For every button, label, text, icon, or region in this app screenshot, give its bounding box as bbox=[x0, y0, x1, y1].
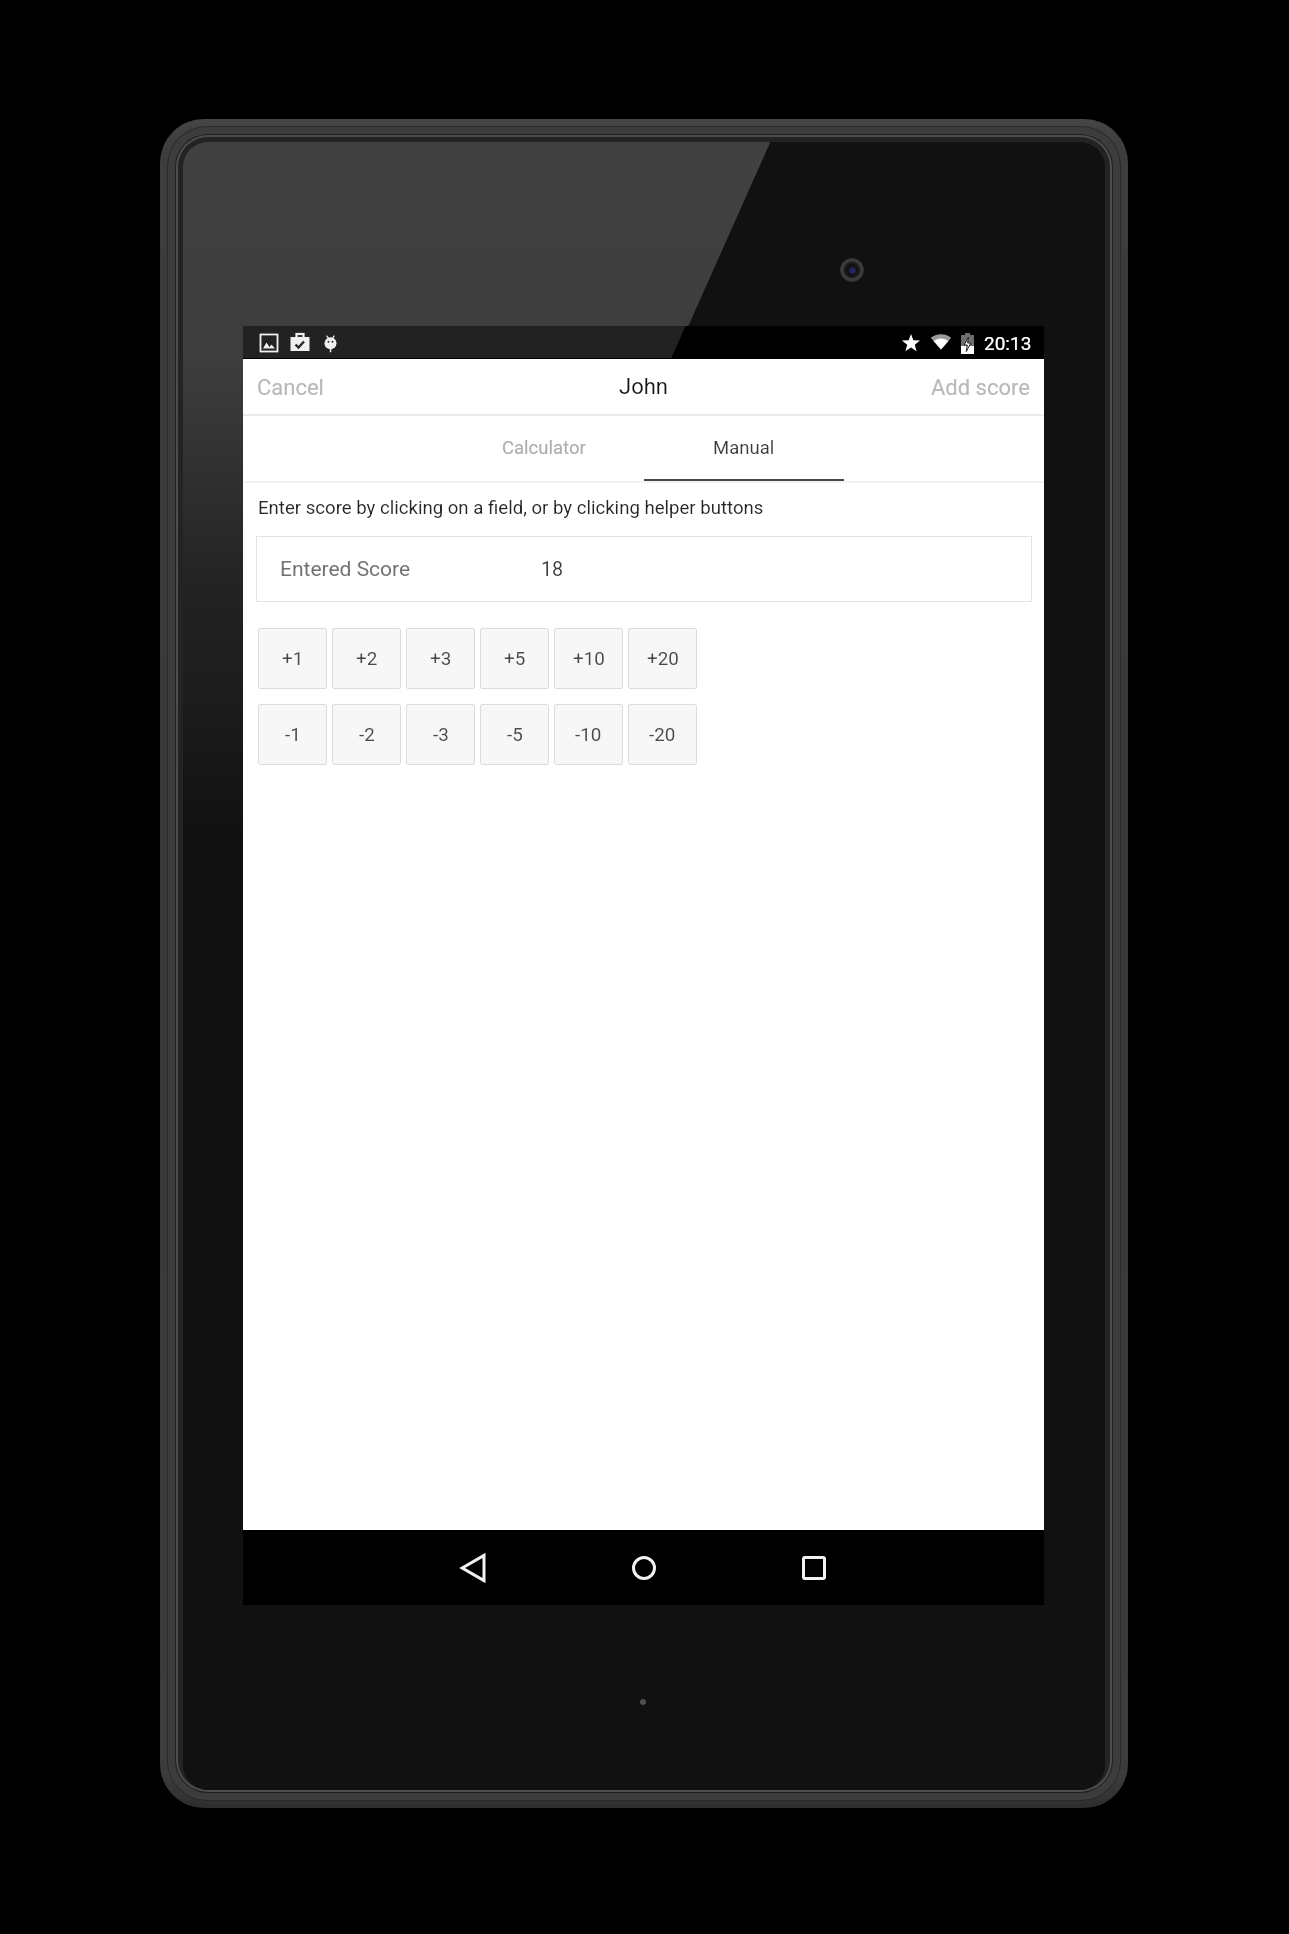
staticText: +20 bbox=[647, 648, 679, 670]
button[interactable]: Add score bbox=[919, 361, 1042, 415]
staticText: -2 bbox=[359, 724, 375, 746]
staticText: John bbox=[619, 374, 668, 400]
button[interactable]: Calculator bbox=[444, 416, 644, 483]
staticText: Calculator bbox=[502, 437, 586, 459]
staticText: 20:13 bbox=[984, 332, 1032, 354]
button[interactable]: Home bbox=[594, 1530, 694, 1605]
button[interactable]: -3 bbox=[406, 704, 475, 765]
button[interactable]: +5 bbox=[480, 628, 549, 689]
staticText: Entered Score bbox=[280, 557, 411, 582]
button[interactable]: Recent apps bbox=[764, 1530, 864, 1605]
button[interactable]: +3 bbox=[406, 628, 475, 689]
button[interactable]: Cancel bbox=[245, 361, 336, 415]
staticText: Enter score by clicking on a field, or b… bbox=[258, 497, 764, 519]
button[interactable]: -5 bbox=[480, 704, 549, 765]
button[interactable]: -20 bbox=[628, 704, 697, 765]
staticText: +5 bbox=[504, 648, 526, 670]
staticText: -1 bbox=[285, 724, 301, 746]
button[interactable]: Back bbox=[424, 1530, 524, 1605]
staticText: 18 bbox=[541, 558, 564, 581]
staticText: Add score bbox=[931, 375, 1030, 401]
button[interactable]: +20 bbox=[628, 628, 697, 689]
button[interactable]: +2 bbox=[332, 628, 401, 689]
staticText: +3 bbox=[430, 648, 452, 670]
button[interactable]: +10 bbox=[554, 628, 623, 689]
staticText: -5 bbox=[507, 724, 523, 746]
button[interactable]: +1 bbox=[258, 628, 327, 689]
button[interactable]: Manual bbox=[644, 416, 844, 483]
staticText: -20 bbox=[649, 724, 676, 746]
button[interactable]: -1 bbox=[258, 704, 327, 765]
staticText: -10 bbox=[575, 724, 602, 746]
staticText: +1 bbox=[282, 648, 304, 670]
staticText: Manual bbox=[713, 437, 775, 459]
staticText: Cancel bbox=[257, 375, 324, 401]
staticText: +10 bbox=[573, 648, 605, 670]
staticText: +2 bbox=[356, 648, 378, 670]
button[interactable]: Entered Score bbox=[256, 536, 1032, 602]
button[interactable]: -2 bbox=[332, 704, 401, 765]
button[interactable]: -10 bbox=[554, 704, 623, 765]
staticText: -3 bbox=[433, 724, 449, 746]
